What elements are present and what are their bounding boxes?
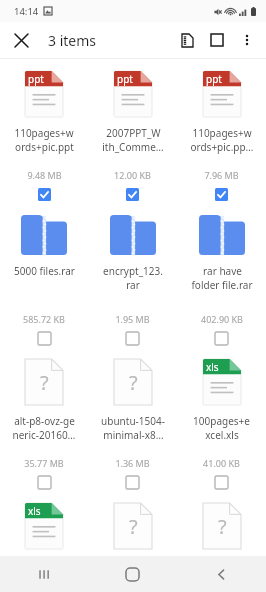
- button[interactable]: Home: [88, 556, 177, 592]
- button[interactable]: Close: [6, 25, 36, 55]
- staticText: 5000 files.rar: [14, 264, 75, 278]
- staticText: rar have: [203, 264, 242, 278]
- staticText: 100pages+e: [193, 414, 250, 428]
- button[interactable]: ppt: [0, 63, 88, 207]
- button[interactable]: 5000 files.rar: [0, 207, 88, 351]
- staticText: 7.96 MB: [204, 169, 239, 181]
- button[interactable]: Not selected: [126, 332, 139, 345]
- button[interactable]: ppt: [177, 63, 266, 207]
- staticText: ?: [129, 369, 138, 396]
- staticText: 2007PPT_W: [106, 126, 161, 140]
- button[interactable]: Select all: [202, 25, 232, 55]
- staticText: ith_Comme…: [102, 140, 164, 154]
- button[interactable]: More options: [232, 25, 262, 55]
- staticText: encrypt_123.: [103, 264, 163, 278]
- staticText: ?: [218, 513, 227, 540]
- staticText: 585.72 KB: [23, 313, 65, 325]
- staticText: 110pages+w: [192, 126, 252, 140]
- staticText: ppt: [206, 72, 222, 86]
- button[interactable]: ?: [0, 351, 88, 495]
- button[interactable]: Selected: [215, 188, 228, 201]
- button[interactable]: Not selected: [38, 476, 51, 489]
- staticText: 41.00 KB: [203, 457, 240, 469]
- staticText: 9.48 MB: [27, 169, 62, 181]
- button[interactable]: encrypt_123.: [88, 207, 177, 351]
- button[interactable]: Not selected: [126, 476, 139, 489]
- button[interactable]: Selected: [38, 188, 51, 201]
- button[interactable]: Selected: [126, 188, 139, 201]
- button[interactable]: rar have: [177, 207, 266, 351]
- button[interactable]: Not selected: [38, 332, 51, 345]
- button[interactable]: Recents: [0, 556, 88, 592]
- staticText: xls: [28, 504, 41, 518]
- staticText: 110pages+w: [14, 126, 74, 140]
- staticText: rar: [126, 278, 140, 292]
- button[interactable]: Not selected: [215, 476, 228, 489]
- staticText: alt-p8-ovz-ge: [14, 414, 75, 428]
- staticText: 14:14: [14, 5, 39, 18]
- staticText: minimal-x8…: [103, 428, 164, 442]
- button[interactable]: ppt: [88, 63, 177, 207]
- staticText: 1.95 MB: [115, 313, 150, 325]
- button[interactable]: ?: [88, 351, 177, 495]
- button[interactable]: Compress: [172, 25, 202, 55]
- staticText: folder file.rar: [191, 278, 253, 292]
- button[interactable]: Back: [177, 556, 266, 592]
- staticText: xcel.xls: [205, 428, 239, 442]
- button[interactable]: xls: [177, 351, 266, 495]
- staticText: ?: [129, 513, 138, 540]
- staticText: ords+pic.pp…: [190, 140, 254, 154]
- staticText: ords+pic.ppt: [15, 140, 74, 154]
- staticText: ?: [40, 369, 49, 396]
- staticText: neric-20160…: [12, 428, 76, 442]
- button[interactable]: Not selected: [215, 332, 228, 345]
- staticText: 3 items: [48, 31, 97, 50]
- staticText: 1.36 MB: [115, 457, 150, 469]
- staticText: ppt: [117, 72, 133, 86]
- staticText: 12.00 KB: [114, 169, 151, 181]
- staticText: xls: [206, 360, 219, 374]
- staticText: ubuntu-1504-: [101, 414, 165, 428]
- staticText: 402.90 KB: [201, 313, 243, 325]
- staticText: ppt: [28, 72, 44, 86]
- staticText: 35.77 MB: [24, 457, 64, 469]
